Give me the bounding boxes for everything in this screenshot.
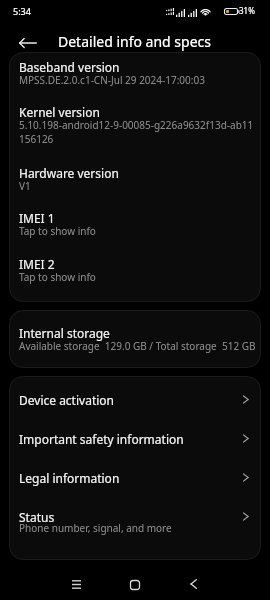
- staticText: IMEI 2: [19, 256, 55, 272]
- staticText: Legal information: [19, 470, 120, 486]
- staticText: Detailed info and specs: [58, 32, 211, 51]
- staticText: 31%: [239, 5, 255, 16]
- staticText: Device activation: [19, 392, 114, 408]
- button[interactable]: Device activation: [9, 376, 261, 415]
- button[interactable]: Legal information: [9, 454, 261, 493]
- button[interactable]: Recent apps: [59, 567, 93, 600]
- staticText: Hardware version: [19, 165, 119, 181]
- staticText: Status: [19, 509, 55, 525]
- staticText: Tap to show info: [19, 270, 96, 284]
- staticText: V1: [19, 179, 31, 193]
- button[interactable]: Back: [176, 567, 210, 600]
- staticText: MPSS.DE.2.0.c1-CN-Jul 29 2024-17:00:03: [19, 73, 205, 87]
- button[interactable]: IMEI 1: [9, 205, 261, 251]
- staticText: Tap to show info: [19, 224, 96, 238]
- button[interactable]: IMEI 2: [9, 251, 261, 297]
- staticText: Available storage 129.0 GB / Total stora…: [19, 339, 256, 353]
- button[interactable]: [9, 310, 261, 368]
- staticText: IMEI 1: [19, 210, 55, 226]
- button[interactable]: Home: [118, 568, 152, 600]
- staticText: Baseband version: [19, 59, 120, 75]
- staticText: Internal storage: [19, 325, 110, 341]
- staticText: Important safety information: [19, 431, 184, 447]
- staticText: Phone number, signal, and more: [19, 521, 172, 535]
- staticText: 5:34: [13, 5, 31, 17]
- staticText: Kernel version: [19, 104, 100, 120]
- button[interactable]: Status: [9, 493, 261, 540]
- button[interactable]: Back: [14, 29, 42, 57]
- button[interactable]: Important safety information: [9, 415, 261, 454]
- staticText: 5.10.198-android12-9-00085-g226a9632f13d…: [19, 118, 254, 146]
